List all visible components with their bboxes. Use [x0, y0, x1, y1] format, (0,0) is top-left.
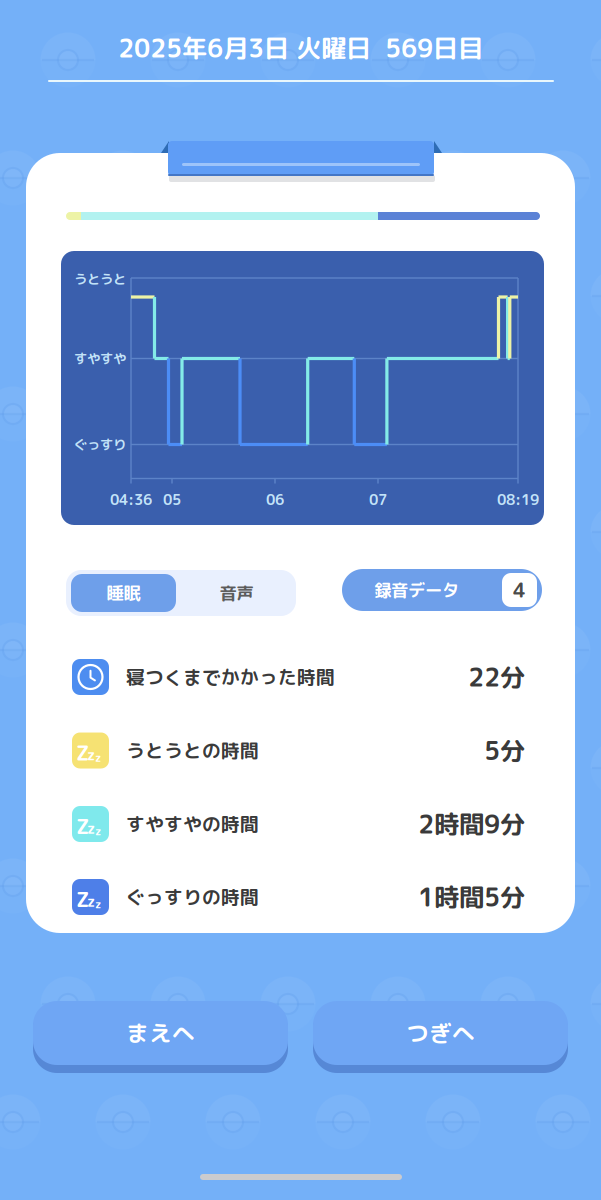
staticText: z — [87, 891, 95, 911]
staticText: 07 — [369, 489, 387, 510]
staticText: 06 — [266, 489, 284, 510]
button[interactable]: 録音データ — [342, 569, 542, 611]
staticText: z — [95, 749, 101, 765]
staticText: z — [87, 744, 95, 765]
staticText: うとうとの時間 — [126, 737, 259, 763]
staticText: 05 — [163, 489, 181, 510]
staticText: 寝つくまでかかった時間 — [126, 664, 335, 690]
staticText: 22分 — [468, 659, 525, 695]
button[interactable]: まえへ — [33, 1001, 288, 1073]
staticText: ぐっすりの時間 — [126, 884, 259, 910]
staticText: つぎへ — [406, 1017, 475, 1049]
staticText: 睡眠 — [106, 581, 140, 605]
staticText: ぐっすり — [74, 435, 126, 454]
staticText: うとうと — [74, 270, 126, 288]
staticText: 2時間9分 — [418, 806, 525, 842]
staticText: すやすやの時間 — [126, 811, 259, 837]
button[interactable]: Z — [72, 788, 526, 861]
staticText: 08:19 — [497, 489, 539, 510]
button[interactable]: 音声 — [184, 574, 289, 612]
staticText: 4 — [513, 576, 526, 604]
staticText: まえへ — [126, 1017, 195, 1049]
staticText: 2025年6月3日 火曜日 569日目 — [118, 30, 483, 66]
button[interactable]: Z — [72, 861, 526, 934]
staticText: 1時間5分 — [418, 879, 525, 915]
staticText: Z — [76, 737, 89, 767]
staticText: 音声 — [219, 581, 253, 605]
staticText: 04:36 — [110, 489, 152, 510]
staticText: z — [95, 823, 101, 839]
button[interactable]: つぎへ — [313, 1001, 568, 1073]
staticText: z — [87, 818, 95, 838]
staticText: 録音データ — [374, 578, 459, 602]
button[interactable]: Z — [72, 714, 526, 787]
staticText: Z — [76, 811, 89, 841]
staticText: 5分 — [484, 733, 525, 768]
button[interactable]: 寝つくまでかかった時間 — [72, 641, 526, 714]
button[interactable]: 睡眠 — [71, 574, 176, 612]
staticText: すやすや — [74, 349, 126, 368]
staticText: z — [95, 896, 101, 912]
staticText: Z — [76, 884, 89, 914]
